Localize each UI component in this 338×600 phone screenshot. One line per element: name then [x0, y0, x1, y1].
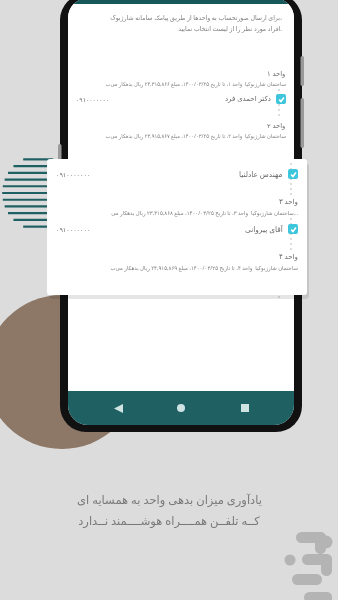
staticText: ساختمان شارژبوکیا واحد ۴، تا تاریخ ۱۴۰۰/… [110, 264, 298, 271]
button[interactable]: واحد ۱ [68, 67, 294, 89]
staticText: واحد ۳ [279, 197, 298, 207]
staticText: واحد ۴ [279, 252, 298, 262]
staticText: ۰۹۱۰۰۰۰۰۰۰ [76, 226, 110, 233]
button[interactable]: واحد ۲ [68, 119, 294, 141]
staticText: کــه تلفــن همــــراه هوشــــمند نــدارد [78, 513, 260, 529]
button[interactable]: Selected [288, 169, 298, 179]
staticText: دکتر احمدی فرد [225, 94, 271, 104]
staticText: ساختمان شارژبوکیا واحد ۳، تا تاریخ ۱۴۰۰/… [111, 209, 298, 216]
staticText: آقای پیروانی [245, 224, 283, 234]
button[interactable]: واحد ۱۱ [68, 249, 294, 271]
staticText: ۰۹۱۰۰۰۰۰۰۰ [56, 226, 91, 233]
staticText: آقای خضلی [237, 224, 271, 234]
button[interactable]: Selected [288, 224, 298, 234]
button[interactable]: Selected [276, 94, 286, 104]
button[interactable]: Selected [276, 224, 286, 234]
button[interactable]: واحد ۴ [47, 250, 307, 273]
staticText: ساختمان شارژبوکیا واحد ۱، تا تاریخ ۱۴۰۰/… [105, 80, 286, 87]
button[interactable]: ۰۹۱۰۰۰۰۰۰۰ [47, 163, 307, 185]
button[interactable]: ۰۹۱۰۰۰۰۰۰۰ [47, 218, 307, 240]
staticText: ساختمان شارژبوکیا واحد ۲، تا تاریخ ۱۴۰۰/… [105, 132, 286, 139]
staticText: واحد ۱ [267, 69, 286, 78]
button[interactable]: Back [104, 394, 132, 422]
staticText: افراد مورد نظر را از لیست انتخاب نمایید. [178, 24, 282, 32]
button[interactable]: واحد ۳ [47, 195, 307, 218]
staticText: مهندس عادلنیا [239, 169, 283, 179]
staticText: یادآوری میزان بدهی واحد به همسایه ای [77, 492, 262, 508]
button[interactable]: ۰۹۱۰۰۰۰۰۰۰ [68, 219, 294, 239]
button[interactable]: Home [167, 394, 195, 422]
staticText: برای ارسال صورتحساب به واحدها از طریق پی… [110, 13, 282, 21]
button[interactable]: ۰۹۱۰۰۰۰۰۰۰ [68, 271, 294, 291]
staticText: واحد ۲ [267, 121, 286, 130]
staticText: ۰۹۱۰۰۰۰۰۰۰ [56, 171, 91, 178]
staticText: ساختمان شارژبوکیا واحد ۱۱، تا تاریخ ۱۴۰۰… [102, 262, 286, 269]
button[interactable]: ۰۹۱۰۰۰۰۰۰۰ [68, 89, 294, 109]
staticText: ۰۹۱۰۰۰۰۰۰۰ [76, 96, 110, 103]
button[interactable]: Recents [231, 394, 259, 422]
staticText: واحد ۱۱ [263, 251, 286, 260]
